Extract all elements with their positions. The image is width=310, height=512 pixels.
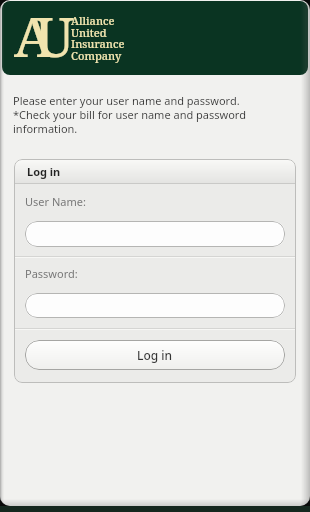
staticText: User Name: xyxy=(25,194,86,209)
button[interactable] xyxy=(25,221,285,247)
button[interactable] xyxy=(25,293,285,318)
button[interactable]: Log in xyxy=(25,340,285,370)
staticText: Log in xyxy=(137,347,173,363)
staticText: Please enter your user name and password… xyxy=(13,93,246,136)
staticText: U xyxy=(35,1,75,73)
staticText: Password: xyxy=(25,266,78,281)
staticText: Company xyxy=(71,48,122,63)
staticText: A xyxy=(14,1,53,73)
staticText: Log in xyxy=(27,164,61,179)
staticText: Alliance xyxy=(71,13,115,28)
staticText: United xyxy=(71,25,107,40)
staticText: Insurance xyxy=(71,36,125,51)
